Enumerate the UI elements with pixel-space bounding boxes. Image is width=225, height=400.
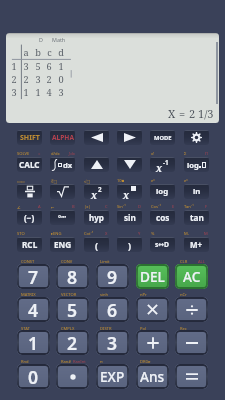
staticText: 1/3 [198,106,214,121]
staticText: 2 [67,331,78,355]
staticText: b [35,46,41,58]
staticText: Ran# [61,359,72,365]
button[interactable]: log [150,184,175,199]
button[interactable]: Integral [50,157,75,172]
staticText: 2 [23,73,29,85]
button[interactable]: (−) [17,210,42,225]
button[interactable]: Multiply [136,297,169,322]
button[interactable]: log [184,157,209,172]
staticText: ∠ [17,205,21,210]
staticText: 4 [28,298,39,322]
button[interactable]: Fraction [17,184,42,199]
button[interactable]: Ans [136,364,169,389]
staticText: x [156,161,163,172]
button[interactable]: ) [117,237,142,252]
staticText: d [58,46,64,58]
staticText: 3 [35,73,41,85]
button[interactable]: Up [84,157,109,172]
button[interactable]: 9 [96,264,129,289]
button[interactable]: x [117,184,142,199]
button[interactable]: Square root [50,184,75,199]
staticText: |x| [84,204,91,210]
button[interactable]: AC [175,264,208,289]
button[interactable]: SHIFT [17,130,42,145]
button[interactable]: DEL [136,264,169,289]
staticText: RCL [22,239,38,250]
staticText: Cos⁻¹ [151,204,161,210]
button[interactable]: CALC [17,157,42,172]
button[interactable]: Equals [175,364,208,389]
button[interactable]: Right [117,130,142,145]
staticText: SHIFT [20,133,40,143]
button[interactable]: Minus [175,330,208,355]
button[interactable]: Down [117,157,142,172]
button[interactable]: 2 [56,330,89,355]
button[interactable]: 8 [56,264,89,289]
button[interactable]: sin [117,210,142,225]
staticText: 9 [107,265,118,289]
button[interactable]: hyp [84,210,109,225]
staticText: A [38,204,41,210]
button[interactable]: 5 [56,297,89,322]
staticText: M+ [190,239,203,250]
button[interactable]: Left [84,130,109,145]
button[interactable]: Plus [136,330,169,355]
staticText: DEL [140,267,165,286]
button[interactable]: MODE [150,130,175,145]
staticText: 7 [28,265,39,289]
button[interactable]: 7 [17,264,50,289]
staticText: Rnd [21,359,29,365]
staticText: E [172,204,175,210]
staticText: 10▪ [117,178,125,184]
button[interactable]: ENG [50,237,75,252]
button[interactable]: Divide [175,297,208,322]
staticText: s↔D [155,240,170,249]
staticText: D [138,204,141,210]
button[interactable]: RCL [17,237,42,252]
staticText: π [100,359,103,365]
staticText: log [156,186,169,197]
button[interactable]: °’’’ [50,210,75,225]
other: Minus [186,341,198,345]
staticText: = [179,106,186,121]
staticText: MODE [154,134,172,142]
button[interactable]: s↔D [150,237,175,252]
staticText: STAT [21,326,30,332]
staticText: sin [124,212,136,223]
staticText: 2 [46,73,52,85]
button[interactable]: tan [184,210,209,225]
button[interactable]: x [84,184,109,199]
button[interactable]: Decimal point [56,364,89,389]
staticText: eˣ [184,178,188,184]
staticText: EXP [100,367,125,386]
staticText: CLR [180,259,188,265]
staticText: CALC [19,159,40,170]
staticText: 3 [58,86,64,98]
button[interactable]: EXP [96,364,129,389]
button[interactable]: x [150,157,175,172]
staticText: Π [205,151,208,157]
staticText: x [123,188,130,199]
button[interactable]: 4 [17,297,50,322]
staticText: % [151,231,155,237]
staticText: sinh [100,292,109,298]
button[interactable]: ALPHA [50,130,75,145]
button[interactable]: cos [150,210,175,225]
staticText: Tan⁻¹ [184,204,194,210]
button[interactable]: Settings [184,130,209,145]
button[interactable]: ( [84,237,109,252]
staticText: M [204,231,208,237]
button[interactable]: 3 [96,330,129,355]
other: Decimal point [70,374,76,380]
staticText: C [105,204,108,210]
button[interactable]: 6 [96,297,129,322]
button[interactable]: 0 [17,364,50,389]
staticText: ▸ENG [51,231,62,237]
button[interactable]: M+ [184,237,209,252]
staticText: M- [184,231,190,237]
button[interactable]: ln [184,184,209,199]
staticText: ALPHA [52,133,74,142]
button[interactable]: 1 [17,330,50,355]
staticText: Sin⁻¹ [117,204,126,210]
staticText: x! [151,151,155,157]
